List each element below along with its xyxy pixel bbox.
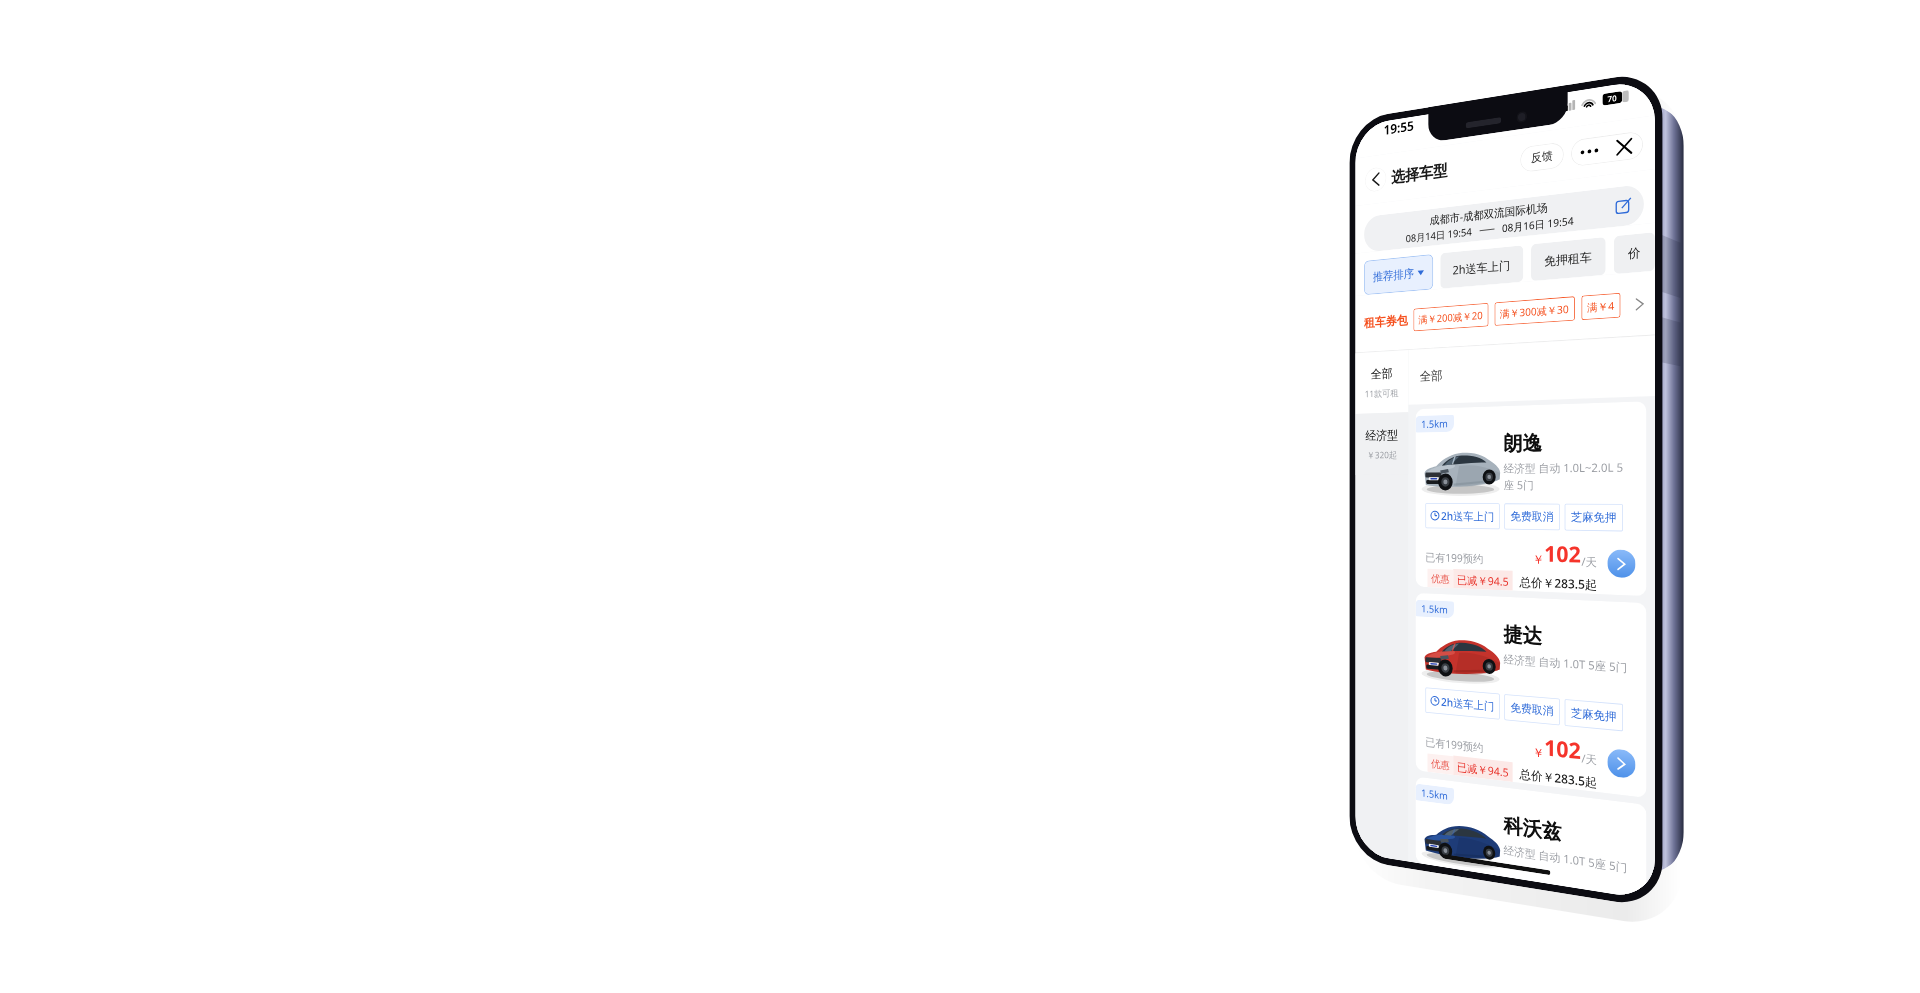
staticText: 总价￥283.5起 — [1519, 765, 1598, 790]
staticText: 2h送车上门 — [1452, 257, 1510, 278]
button[interactable]: 1.5km — [1415, 593, 1646, 798]
button[interactable]: 1.5km — [1415, 776, 1646, 899]
staticText: 11款可租 — [1365, 386, 1399, 399]
staticText: 选择车型 — [1391, 161, 1447, 187]
staticText: 成都市-成都双流国际机场 — [1430, 199, 1548, 228]
button[interactable]: Edit trip — [1612, 194, 1634, 218]
staticText: 优惠 — [1431, 572, 1450, 585]
staticText: 免押租车 — [1544, 250, 1592, 270]
staticText: 满￥300减￥30 — [1500, 301, 1569, 321]
staticText: 朗逸 — [1503, 430, 1542, 456]
staticText: 08月14日 19:54 — [1406, 224, 1472, 245]
button[interactable]: 经济型 — [1355, 412, 1408, 475]
staticText: 捷达 — [1503, 622, 1542, 649]
staticText: 反馈 — [1531, 149, 1553, 166]
staticText: 2h送车上门 — [1441, 694, 1494, 714]
staticText: 1.5km — [1421, 601, 1448, 617]
staticText: 优惠 — [1431, 757, 1450, 771]
staticText: 经济型 自动 1.0T 5座 5门 — [1503, 651, 1628, 675]
staticText: 经济型 自动 1.0L~2.0L 5座 5门 — [1503, 459, 1631, 493]
staticText: 全部 — [1420, 368, 1442, 384]
staticText: 科沃兹 — [1503, 813, 1561, 845]
staticText: 已减￥94.5 — [1457, 759, 1509, 778]
button[interactable]: 全部 — [1355, 350, 1408, 414]
button[interactable]: 1.5km — [1415, 401, 1646, 596]
button[interactable]: 成都市-成都双流国际机场 — [1364, 184, 1644, 253]
staticText: 102 — [1544, 732, 1581, 766]
button[interactable]: 推荐排序 — [1364, 254, 1433, 295]
button[interactable]: More options — [1574, 136, 1605, 167]
staticText: 70 — [1607, 92, 1617, 105]
button[interactable]: Back — [1365, 166, 1386, 193]
staticText: 已有199预约 — [1425, 734, 1484, 755]
staticText: 总价￥283.5起 — [1519, 573, 1598, 593]
button[interactable]: More coupons — [1632, 296, 1647, 312]
staticText: 免费取消 — [1510, 510, 1553, 525]
staticText: /天 — [1581, 554, 1598, 570]
button[interactable]: Select this car — [1607, 748, 1635, 779]
staticText: 已减￥94.5 — [1457, 572, 1509, 587]
staticText: 满￥200减￥20 — [1418, 308, 1483, 326]
staticText: 推荐排序 — [1373, 267, 1414, 285]
staticText: 19:55 — [1384, 116, 1414, 139]
button[interactable]: 反馈 — [1520, 141, 1564, 173]
staticText: 全部 — [1371, 366, 1393, 382]
staticText: 芝麻免押 — [1571, 706, 1616, 725]
button[interactable]: 价 — [1614, 232, 1655, 274]
staticText: 1.5km — [1421, 416, 1448, 431]
staticText: 102 — [1544, 538, 1581, 569]
button[interactable]: 满￥300减￥30 — [1494, 296, 1575, 326]
staticText: 08月16日 19:54 — [1502, 213, 1574, 235]
staticText: 满￥4 — [1587, 298, 1615, 315]
button[interactable]: Close — [1608, 131, 1640, 162]
staticText: 免费取消 — [1510, 701, 1553, 719]
staticText: 已有199预约 — [1425, 550, 1484, 566]
button[interactable]: 满￥200减￥20 — [1413, 303, 1488, 331]
staticText: 1.5km — [1421, 786, 1448, 803]
staticText: ￥ — [1532, 745, 1544, 762]
staticText: ￥ — [1532, 552, 1544, 568]
button[interactable]: 免押租车 — [1531, 237, 1606, 281]
staticText: 经济型 自动 1.0T 5座 5门 — [1503, 842, 1628, 876]
staticText: 租车券包 — [1364, 313, 1408, 331]
button[interactable]: Select this car — [1607, 549, 1635, 578]
staticText: 2h送车上门 — [1441, 508, 1494, 524]
button[interactable]: 2h送车上门 — [1440, 245, 1523, 289]
staticText: 芝麻免押 — [1571, 510, 1616, 525]
staticText: 价 — [1628, 245, 1641, 262]
staticText: ￥320起 — [1367, 448, 1397, 461]
button[interactable]: 满￥4 — [1581, 293, 1621, 320]
staticText: /天 — [1581, 750, 1598, 768]
staticText: 经济型 — [1365, 428, 1398, 444]
